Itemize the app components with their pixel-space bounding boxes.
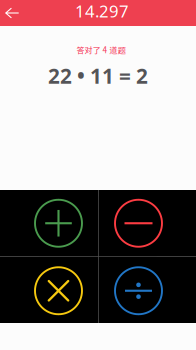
button[interactable]: Subtract: [98, 190, 196, 256]
button[interactable]: Add: [0, 190, 98, 256]
button[interactable]: Multiply: [0, 256, 98, 323]
button[interactable]: Back: [0, 0, 24, 26]
button[interactable]: Divide: [98, 256, 196, 323]
staticText: 22 • 11 = 2: [48, 62, 148, 90]
staticText: 答对了 4 道题: [76, 44, 125, 56]
staticText: 14.297: [75, 0, 129, 22]
